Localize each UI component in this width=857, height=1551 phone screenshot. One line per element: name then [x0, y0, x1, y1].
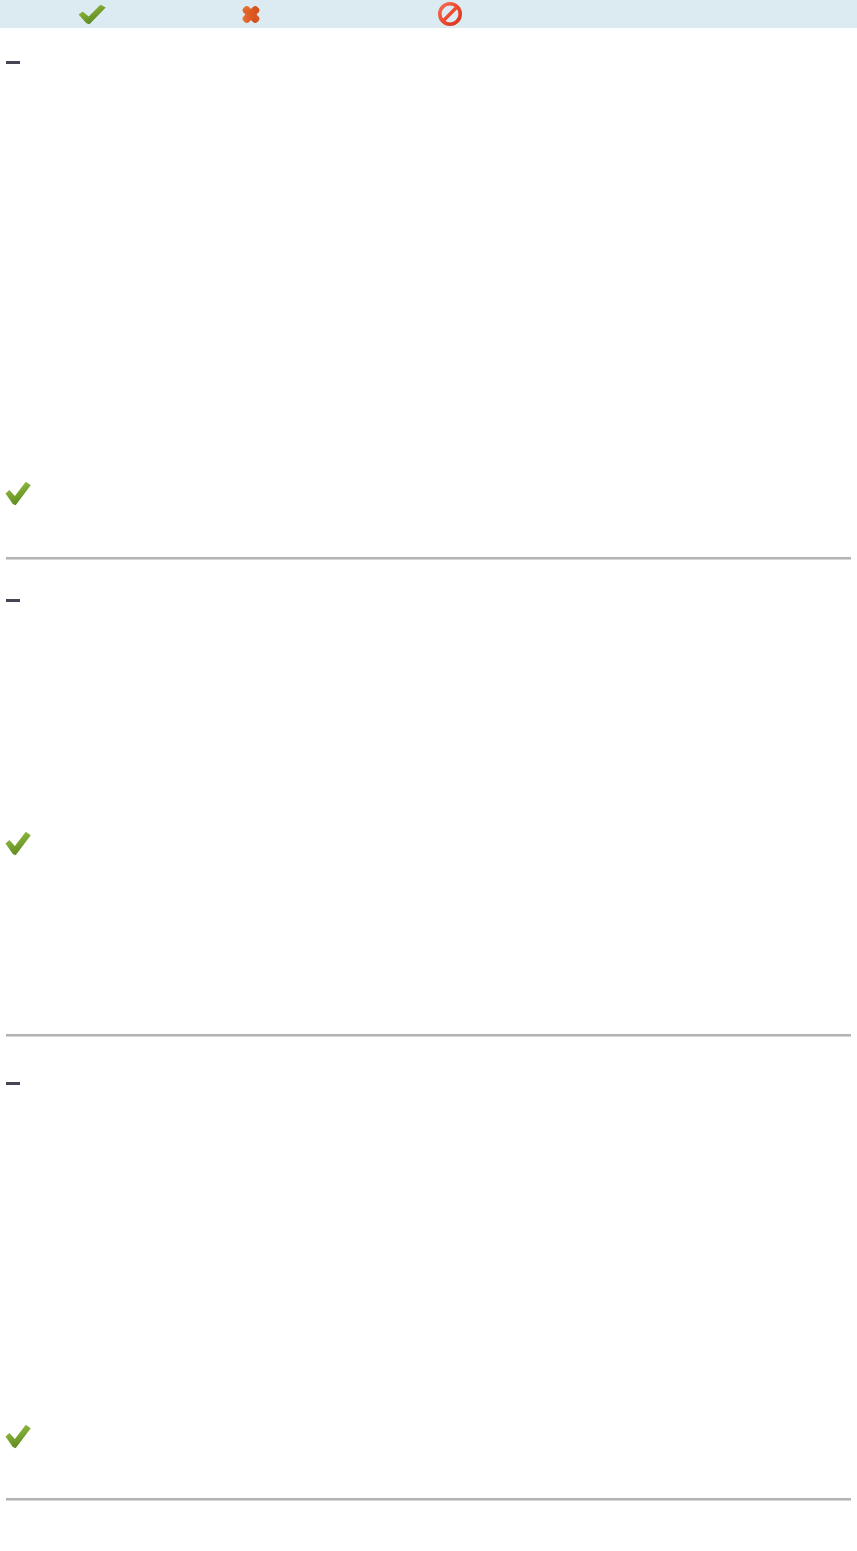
button[interactable] [0, 478, 857, 512]
button[interactable]: Not supported [239, 3, 263, 26]
button[interactable] [0, 828, 857, 862]
button[interactable]: Supported [78, 4, 106, 25]
button[interactable] [0, 1421, 857, 1455]
button[interactable]: Prohibited [438, 2, 462, 26]
